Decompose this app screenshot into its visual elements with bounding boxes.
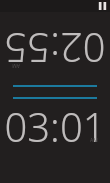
- button[interactable]: 03:01: [0, 99, 110, 147]
- staticText: 02:55: [4, 22, 106, 76]
- staticText: 03:01: [4, 99, 106, 147]
- button[interactable]: Paused: [95, 0, 109, 12]
- button[interactable]: 02:55: [0, 12, 110, 85]
- staticText: AM: [90, 137, 98, 144]
- staticText: AM: [12, 62, 20, 69]
